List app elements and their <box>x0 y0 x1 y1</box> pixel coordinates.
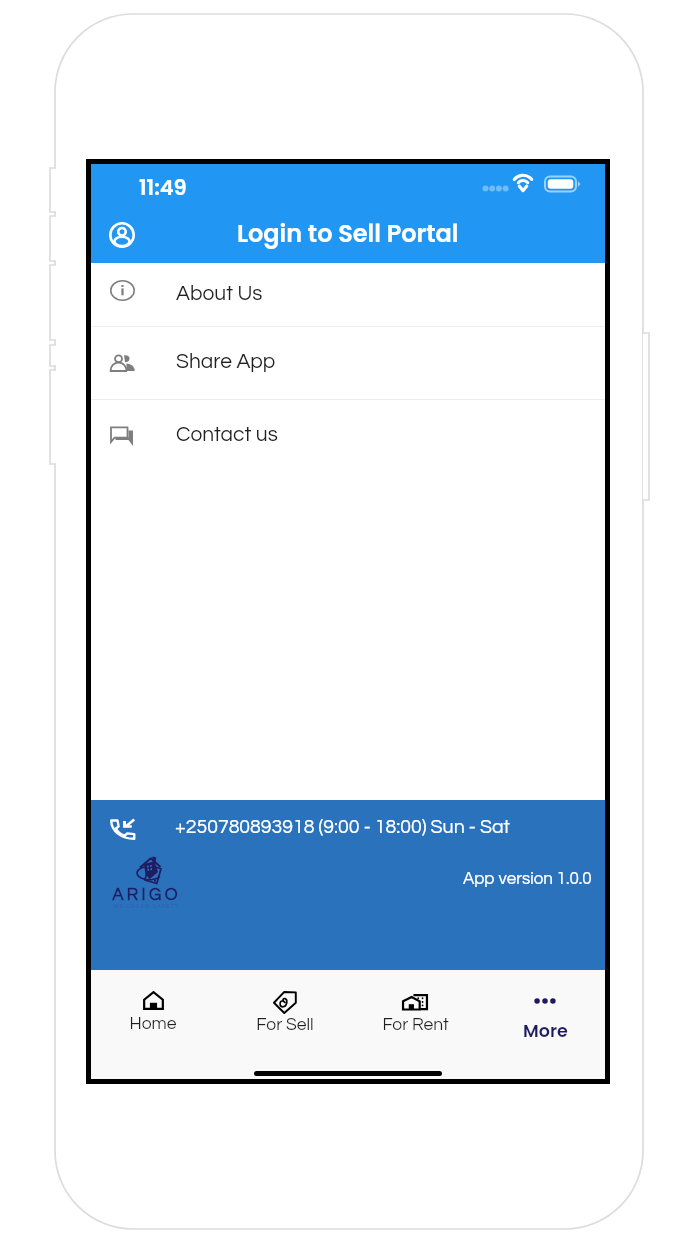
button[interactable]: Account <box>100 213 144 257</box>
staticText: For Sell <box>256 1016 314 1034</box>
staticText: Share App <box>176 351 276 373</box>
button[interactable]: Share App <box>91 327 605 400</box>
other: Call <box>110 818 135 839</box>
staticText: Contact us <box>176 424 278 446</box>
button[interactable]: For Rent <box>370 970 460 1079</box>
staticText: Home <box>129 1015 177 1033</box>
staticText: WE OFFER SAFETY <box>113 903 180 909</box>
staticText: About Us <box>176 283 263 305</box>
staticText: App version 1.0.0 <box>463 870 592 888</box>
staticText: For Rent <box>382 1016 449 1034</box>
button[interactable]: More <box>500 970 590 1079</box>
staticText: +250780893918 (9:00 - 18:00) Sun - Sat <box>175 817 510 837</box>
button[interactable]: Contact us <box>91 400 605 472</box>
staticText: ARIGO <box>112 886 181 904</box>
button[interactable]: For Sell <box>240 970 330 1079</box>
staticText: 11:49 <box>139 173 187 202</box>
button[interactable]: About Us <box>91 263 605 327</box>
button[interactable]: Home <box>108 970 198 1079</box>
staticText: Login to Sell Portal <box>237 217 459 251</box>
staticText: More <box>523 1019 568 1044</box>
